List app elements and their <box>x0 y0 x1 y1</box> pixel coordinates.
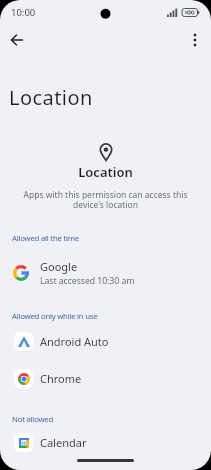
button[interactable]: Google <box>0 253 211 293</box>
button[interactable]: Android Auto <box>0 332 211 351</box>
staticText: Allowed only while in use <box>12 311 98 322</box>
button[interactable] <box>185 30 205 50</box>
button[interactable]: Calendar <box>0 433 211 452</box>
staticText: Last accessed 10:30 am <box>40 275 135 287</box>
button[interactable] <box>6 29 28 51</box>
staticText: Not allowed <box>12 414 54 425</box>
staticText: Chrome <box>40 371 82 386</box>
staticText: Allowed all the time <box>12 233 79 244</box>
staticText: Android Auto <box>40 334 109 349</box>
staticText: Location <box>0 163 211 181</box>
staticText: Location <box>9 84 93 111</box>
staticText: 10:00 <box>11 6 36 19</box>
staticText: Apps with this permission can access thi… <box>0 189 211 210</box>
staticText: Calendar <box>40 435 87 450</box>
button[interactable]: Chrome <box>0 369 211 388</box>
staticText: Google <box>40 259 78 274</box>
